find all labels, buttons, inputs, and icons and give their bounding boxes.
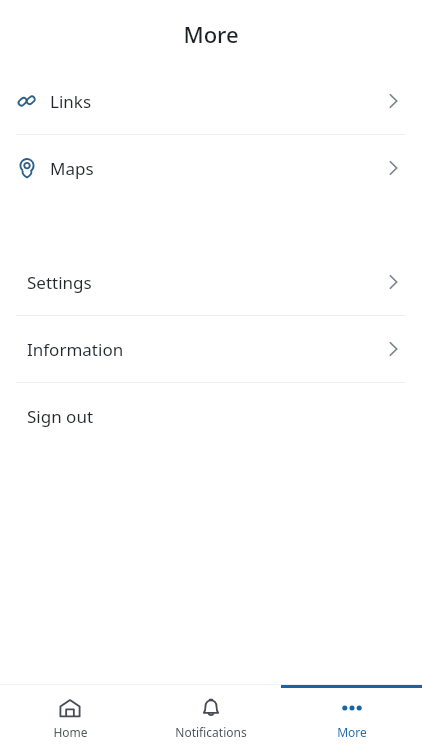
staticText: Links bbox=[50, 90, 92, 113]
button[interactable]: Links bbox=[0, 68, 422, 134]
button[interactable]: Maps bbox=[0, 135, 422, 201]
other: More bbox=[340, 696, 364, 720]
staticText: More bbox=[183, 19, 239, 49]
staticText: More bbox=[337, 724, 367, 740]
button[interactable]: Sign out bbox=[0, 383, 422, 449]
staticText: Maps bbox=[50, 157, 94, 180]
other: Notifications bbox=[199, 696, 223, 720]
other: Home bbox=[58, 696, 82, 720]
staticText: Settings bbox=[27, 271, 92, 294]
button[interactable]: Settings bbox=[0, 249, 422, 315]
staticText: Notifications bbox=[175, 724, 247, 740]
button[interactable]: Home bbox=[0, 685, 140, 750]
button[interactable]: Information bbox=[0, 316, 422, 382]
button[interactable]: More bbox=[281, 685, 422, 750]
staticText: Sign out bbox=[27, 405, 94, 428]
staticText: Home bbox=[53, 724, 88, 740]
staticText: Information bbox=[27, 338, 124, 361]
button[interactable]: Notifications bbox=[140, 685, 281, 750]
